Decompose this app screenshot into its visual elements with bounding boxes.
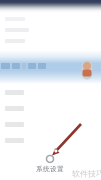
- button[interactable]: 系统设置: [33, 154, 67, 174]
- staticText: 系统设置: [36, 165, 64, 173]
- staticText: 软件技巧: [72, 169, 101, 179]
